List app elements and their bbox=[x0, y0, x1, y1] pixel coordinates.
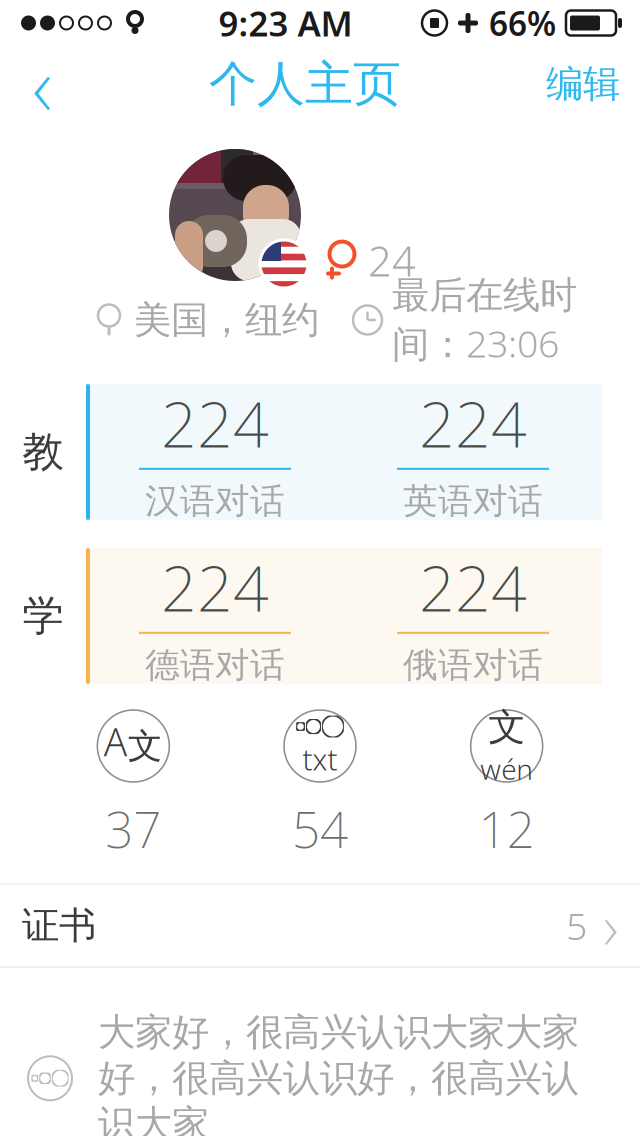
button[interactable]: Back bbox=[0, 46, 84, 122]
staticText: txt bbox=[302, 739, 337, 778]
button[interactable]: 证书 bbox=[0, 884, 640, 966]
staticText: 大家好，很高兴认识大家大家好，很高兴认识好，很高兴认识大家 bbox=[98, 1009, 579, 1136]
staticText: 证书 bbox=[22, 903, 96, 948]
staticText: 5 bbox=[566, 901, 587, 950]
staticText: 最后在线时间：23:06 bbox=[392, 272, 577, 368]
button[interactable]: 224 bbox=[86, 384, 344, 520]
staticText: 224 bbox=[161, 382, 269, 465]
staticText: 66% bbox=[489, 1, 556, 45]
button[interactable]: 224 bbox=[344, 548, 602, 684]
staticText: 54 bbox=[292, 796, 348, 861]
staticText: 编辑 bbox=[546, 61, 620, 107]
staticText: ‹ bbox=[32, 27, 52, 141]
staticText: 学 bbox=[22, 591, 63, 641]
staticText: 教 bbox=[22, 427, 63, 477]
button[interactable]: 224 bbox=[344, 384, 602, 520]
staticText: A bbox=[104, 716, 128, 767]
button[interactable]: A bbox=[40, 710, 227, 861]
staticText: 9:23 AM bbox=[218, 0, 352, 46]
staticText: 汉语对话 bbox=[145, 480, 285, 522]
staticText: › bbox=[603, 883, 618, 968]
button[interactable]: Profile photo bbox=[162, 142, 308, 288]
staticText: 个人主页 bbox=[209, 54, 401, 113]
button[interactable]: 224 bbox=[86, 548, 344, 684]
staticText: 224 bbox=[419, 546, 527, 629]
button[interactable]: 编辑 bbox=[526, 46, 640, 122]
button[interactable]: txt bbox=[227, 710, 413, 861]
staticText: 12 bbox=[479, 796, 535, 861]
staticText: 美国，纽约 bbox=[134, 297, 319, 343]
button[interactable]: 文 bbox=[413, 710, 600, 861]
staticText: 224 bbox=[419, 382, 527, 465]
staticText: 24 bbox=[368, 233, 416, 288]
staticText: 文 bbox=[488, 704, 525, 750]
staticText: 37 bbox=[105, 796, 161, 861]
button[interactable]: 大家好，很高兴认识大家大家好，很高兴认识好，很高兴认识大家 bbox=[0, 967, 640, 1103]
staticText: 224 bbox=[161, 546, 269, 629]
staticText: 俄语对话 bbox=[403, 644, 543, 686]
staticText: 文 bbox=[128, 725, 163, 768]
staticText: 德语对话 bbox=[145, 644, 285, 686]
staticText: wén bbox=[480, 750, 533, 787]
staticText: 英语对话 bbox=[403, 480, 543, 522]
